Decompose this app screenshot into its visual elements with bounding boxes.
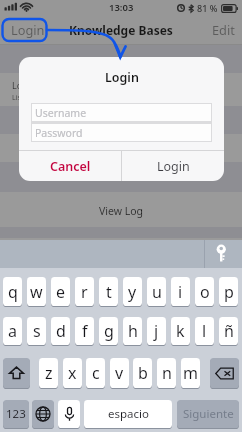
button[interactable]: h bbox=[123, 317, 142, 345]
staticText: k bbox=[176, 320, 185, 342]
staticText: v bbox=[115, 362, 124, 384]
button[interactable]: c bbox=[86, 358, 105, 388]
staticText: 81 % bbox=[197, 2, 218, 14]
button[interactable]: y bbox=[123, 277, 142, 306]
staticText: g bbox=[104, 320, 114, 342]
staticText: Knowledge Bases bbox=[69, 22, 173, 38]
button[interactable] bbox=[0, 134, 242, 162]
button[interactable]: f bbox=[75, 317, 94, 345]
button[interactable]: v bbox=[110, 358, 129, 388]
staticText: Lists bbox=[12, 93, 27, 103]
staticText: Password bbox=[35, 126, 83, 140]
button[interactable]: Backspace bbox=[210, 358, 239, 388]
button[interactable]: Cancel bbox=[19, 151, 121, 181]
button[interactable]: Edit bbox=[205, 18, 242, 41]
staticText: i bbox=[178, 281, 183, 303]
staticText: j bbox=[154, 320, 159, 342]
button[interactable]: Local bbox=[0, 73, 242, 106]
button[interactable]: r bbox=[75, 277, 94, 306]
staticText: l bbox=[202, 320, 207, 342]
staticText: y bbox=[128, 281, 137, 303]
staticText: Login bbox=[105, 69, 139, 86]
staticText: Login bbox=[11, 21, 45, 38]
button[interactable]: n bbox=[157, 358, 176, 388]
staticText: Siguiente bbox=[183, 406, 234, 422]
staticText: o bbox=[200, 281, 210, 303]
staticText: e bbox=[56, 281, 66, 303]
button[interactable]: z bbox=[39, 358, 58, 388]
staticText: Login bbox=[157, 158, 190, 175]
button[interactable]: Siguiente bbox=[177, 400, 239, 428]
staticText: ñ bbox=[224, 320, 234, 342]
button[interactable]: i bbox=[171, 277, 190, 306]
staticText: u bbox=[152, 281, 162, 303]
staticText: a bbox=[8, 320, 17, 342]
button[interactable]: Passwords bbox=[212, 243, 234, 265]
button[interactable]: 123 bbox=[3, 400, 29, 428]
staticText: View Log bbox=[99, 204, 144, 218]
button[interactable]: Dictate bbox=[58, 400, 80, 428]
button[interactable]: Login bbox=[4, 18, 52, 41]
staticText: h bbox=[128, 320, 138, 342]
staticText: p bbox=[224, 281, 234, 303]
button[interactable]: x bbox=[63, 358, 82, 388]
staticText: x bbox=[68, 362, 77, 384]
staticText: Local bbox=[12, 79, 34, 91]
staticText: 13:03 bbox=[109, 1, 134, 14]
button[interactable]: Password bbox=[31, 123, 212, 142]
button[interactable]: ñ bbox=[219, 317, 238, 345]
button[interactable]: m bbox=[181, 358, 200, 388]
button[interactable]: e bbox=[51, 277, 70, 306]
staticText: espacio bbox=[108, 406, 149, 422]
button[interactable]: p bbox=[219, 277, 238, 306]
button[interactable]: l bbox=[195, 317, 214, 345]
staticText: Cancel bbox=[50, 158, 91, 175]
button[interactable]: Change keyboard bbox=[32, 400, 54, 428]
button[interactable] bbox=[0, 106, 242, 134]
button[interactable] bbox=[0, 45, 242, 73]
button[interactable]: o bbox=[195, 277, 214, 306]
button[interactable]: Shift bbox=[3, 358, 30, 388]
staticText: z bbox=[45, 362, 53, 384]
button[interactable]: d bbox=[51, 317, 70, 345]
button[interactable]: Username bbox=[31, 103, 212, 122]
staticText: d bbox=[56, 320, 66, 342]
staticText: r bbox=[81, 281, 88, 303]
staticText: t bbox=[106, 281, 112, 303]
button[interactable]: j bbox=[147, 317, 166, 345]
staticText: f bbox=[82, 320, 88, 342]
staticText: w bbox=[30, 281, 43, 303]
staticText: b bbox=[138, 362, 148, 384]
staticText: n bbox=[162, 362, 172, 384]
staticText: q bbox=[8, 281, 18, 303]
button[interactable]: u bbox=[147, 277, 166, 306]
button[interactable]: k bbox=[171, 317, 190, 345]
staticText: 123 bbox=[6, 406, 26, 422]
button[interactable]: q bbox=[3, 277, 22, 306]
staticText: Edit bbox=[212, 21, 235, 38]
button[interactable]: Login bbox=[122, 151, 224, 181]
staticText: s bbox=[33, 320, 41, 342]
button[interactable]: s bbox=[27, 317, 46, 345]
button[interactable]: a bbox=[3, 317, 22, 345]
button[interactable]: b bbox=[133, 358, 152, 388]
button[interactable] bbox=[0, 162, 242, 192]
button[interactable]: w bbox=[27, 277, 46, 306]
staticText: Username bbox=[35, 106, 87, 120]
staticText: c bbox=[92, 362, 100, 384]
button[interactable]: t bbox=[99, 277, 118, 306]
button[interactable]: View Log bbox=[0, 194, 242, 227]
button[interactable]: espacio bbox=[84, 400, 172, 428]
button[interactable]: g bbox=[99, 317, 118, 345]
staticText: m bbox=[183, 362, 198, 384]
